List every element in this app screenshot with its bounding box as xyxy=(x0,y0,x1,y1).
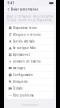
staticText: Bloqueo o reinicio xyxy=(13,33,41,36)
button[interactable]: Mensajes xyxy=(6,65,54,72)
button[interactable]: Atrás xyxy=(6,6,11,12)
button[interactable]: Sonido alterado xyxy=(6,38,54,45)
button[interactable]: Otro problema xyxy=(6,92,54,99)
staticText: Enviar comentarios xyxy=(11,8,38,11)
staticText: Búsqueda xyxy=(13,80,27,83)
staticText: Elige el tema que mejor describa lo que … xyxy=(7,15,53,22)
staticText: Duración de batería xyxy=(13,60,40,63)
button[interactable]: Búsqueda xyxy=(6,78,54,85)
button[interactable]: Duración de batería xyxy=(6,58,54,65)
button[interactable]: Dispositivo lento xyxy=(6,25,54,31)
button[interactable]: Se cuelga o falla xyxy=(6,45,54,52)
staticText: Se cuelga o falla xyxy=(13,46,35,50)
staticText: Aplicaciones xyxy=(13,53,30,56)
button[interactable]: Bloqueo o reinicio xyxy=(6,31,54,38)
button[interactable]: Configuración xyxy=(6,72,54,78)
button[interactable]: Teclado xyxy=(6,85,54,92)
staticText: 9:41 xyxy=(7,1,14,5)
staticText: Sonido alterado xyxy=(13,40,35,43)
staticText: Otro problema xyxy=(13,94,33,97)
staticText: Configuración xyxy=(13,73,33,77)
staticText: Teclado xyxy=(13,87,23,90)
staticText: Mensajes xyxy=(13,66,25,70)
staticText: Dispositivo lento xyxy=(13,26,37,30)
button[interactable]: Aplicaciones xyxy=(6,52,54,58)
